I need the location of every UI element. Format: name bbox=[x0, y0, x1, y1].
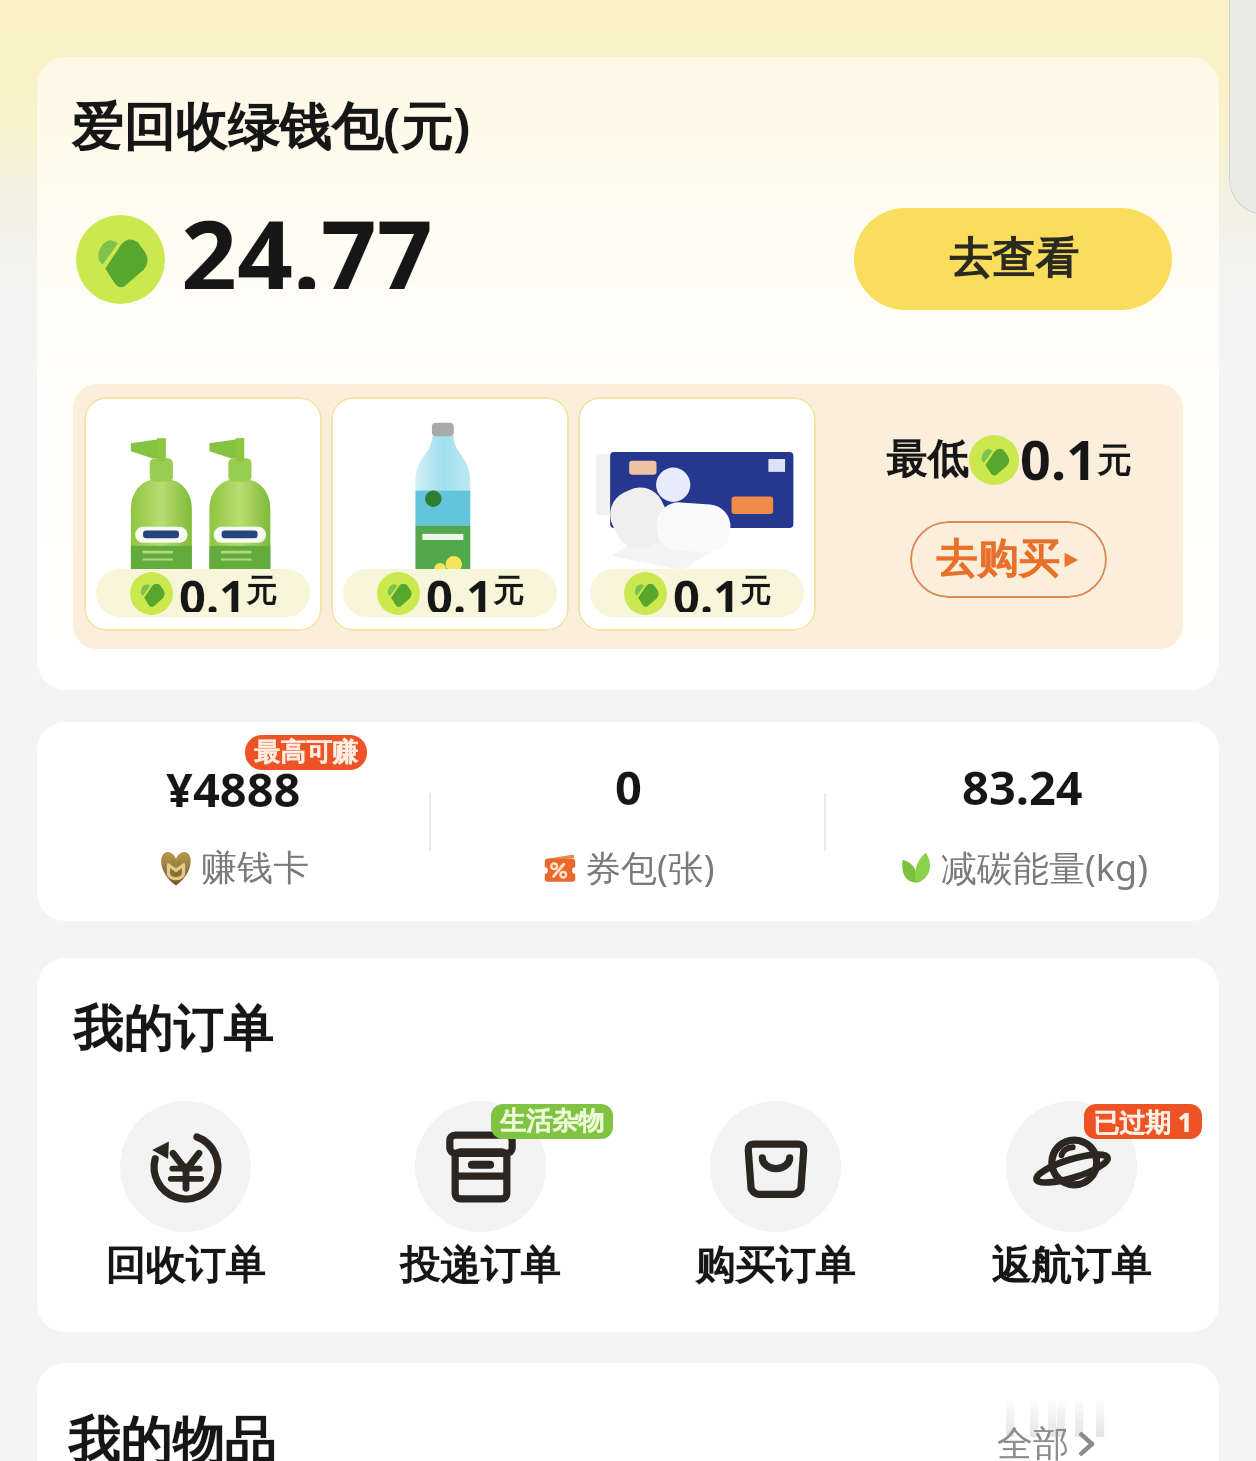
button[interactable]: 全部 bbox=[997, 1421, 1147, 1461]
button[interactable]: 投递订单 bbox=[332, 1101, 627, 1290]
staticText: 我的物品 bbox=[68, 1409, 276, 1461]
button[interactable]: 返航订单 bbox=[923, 1101, 1219, 1290]
staticText: 0.1 bbox=[673, 569, 740, 612]
staticText: 最高可赚 bbox=[254, 736, 358, 769]
staticText: 去购买 bbox=[936, 534, 1059, 586]
button[interactable]: 83.24 bbox=[826, 722, 1219, 921]
staticText: 元 bbox=[1097, 439, 1131, 482]
staticText: 0 bbox=[615, 755, 642, 819]
staticText: 24.77 bbox=[181, 187, 433, 289]
staticText: 已过期 1 bbox=[1093, 1104, 1193, 1139]
staticText: 返航订单 bbox=[991, 1240, 1151, 1290]
staticText: 券包(张) bbox=[585, 843, 715, 892]
staticText: 赚钱卡 bbox=[201, 845, 309, 890]
button[interactable]: 购买订单 bbox=[627, 1101, 923, 1290]
button[interactable]: ¥4888 bbox=[37, 722, 429, 921]
staticText: 爱回收绿钱包(元) bbox=[71, 89, 471, 160]
button[interactable]: 回收订单 bbox=[37, 1101, 332, 1290]
staticText: 元 bbox=[246, 571, 277, 610]
staticText: 购买订单 bbox=[695, 1240, 855, 1290]
staticText: 减碳能量(kg) bbox=[941, 843, 1148, 892]
button[interactable]: Sunlight 洗洁精 0.1元 bbox=[331, 397, 569, 631]
button[interactable]: 0 bbox=[431, 722, 824, 921]
staticText: 83.24 bbox=[962, 755, 1083, 819]
button[interactable]: 去查看 bbox=[854, 208, 1172, 310]
staticText: 元 bbox=[740, 571, 771, 610]
button[interactable]: 去购买 bbox=[910, 521, 1107, 598]
button[interactable]: 蓝月亮洗手液 0.1元 bbox=[84, 397, 322, 631]
staticText: ¥4888 bbox=[166, 757, 301, 821]
staticText: 我的订单 bbox=[73, 998, 273, 1061]
staticText: 投递订单 bbox=[400, 1240, 560, 1290]
staticText: 回收订单 bbox=[105, 1240, 265, 1290]
staticText: 生活杂物 bbox=[500, 1105, 604, 1138]
button[interactable]: 维达卷纸 0.1元 bbox=[578, 397, 816, 631]
staticText: 0.1 bbox=[1020, 422, 1097, 496]
staticText: 0.1 bbox=[426, 569, 493, 612]
staticText: 元 bbox=[493, 571, 524, 610]
staticText: 去查看 bbox=[949, 232, 1078, 286]
staticText: 0.1 bbox=[179, 569, 246, 612]
staticText: 全部 bbox=[997, 1421, 1069, 1461]
staticText: 最低 bbox=[886, 434, 968, 486]
